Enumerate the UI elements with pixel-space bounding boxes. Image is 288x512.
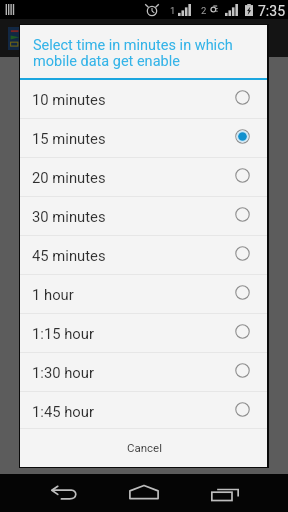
staticText: 1 hour	[32, 286, 74, 303]
button[interactable]: 30 minutes	[20, 197, 267, 236]
staticText: 2	[201, 5, 207, 16]
button[interactable]: 20 minutes	[20, 158, 267, 197]
staticText: 1:30 hour	[32, 364, 94, 381]
staticText: 1:15 hour	[32, 325, 94, 342]
staticText: Cancel	[127, 441, 163, 454]
button[interactable]: Home	[124, 474, 164, 512]
staticText: 1	[170, 5, 176, 16]
staticText: 30 minutes	[32, 208, 106, 225]
staticText: Select time in minutes in which mobile d…	[33, 37, 259, 69]
staticText: 7:35	[258, 3, 285, 19]
staticText: 20 minutes	[32, 169, 106, 186]
button[interactable]: 1:15 hour	[20, 314, 267, 353]
button[interactable]: 1:45 hour	[20, 392, 267, 428]
button[interactable]: Cancel	[20, 429, 267, 467]
button[interactable]: 15 minutes	[20, 119, 267, 158]
button[interactable]: 1 hour	[20, 275, 267, 314]
staticText: 45 minutes	[32, 247, 106, 264]
button[interactable]: Recent apps	[205, 474, 245, 512]
button[interactable]: 1:30 hour	[20, 353, 267, 392]
button[interactable]: Back	[44, 474, 84, 512]
staticText: 15 minutes	[32, 130, 106, 147]
button[interactable]: 10 minutes	[20, 80, 267, 119]
button[interactable]: 45 minutes	[20, 236, 267, 275]
staticText: 10 minutes	[32, 91, 106, 108]
staticText: 1:45 hour	[32, 403, 94, 420]
